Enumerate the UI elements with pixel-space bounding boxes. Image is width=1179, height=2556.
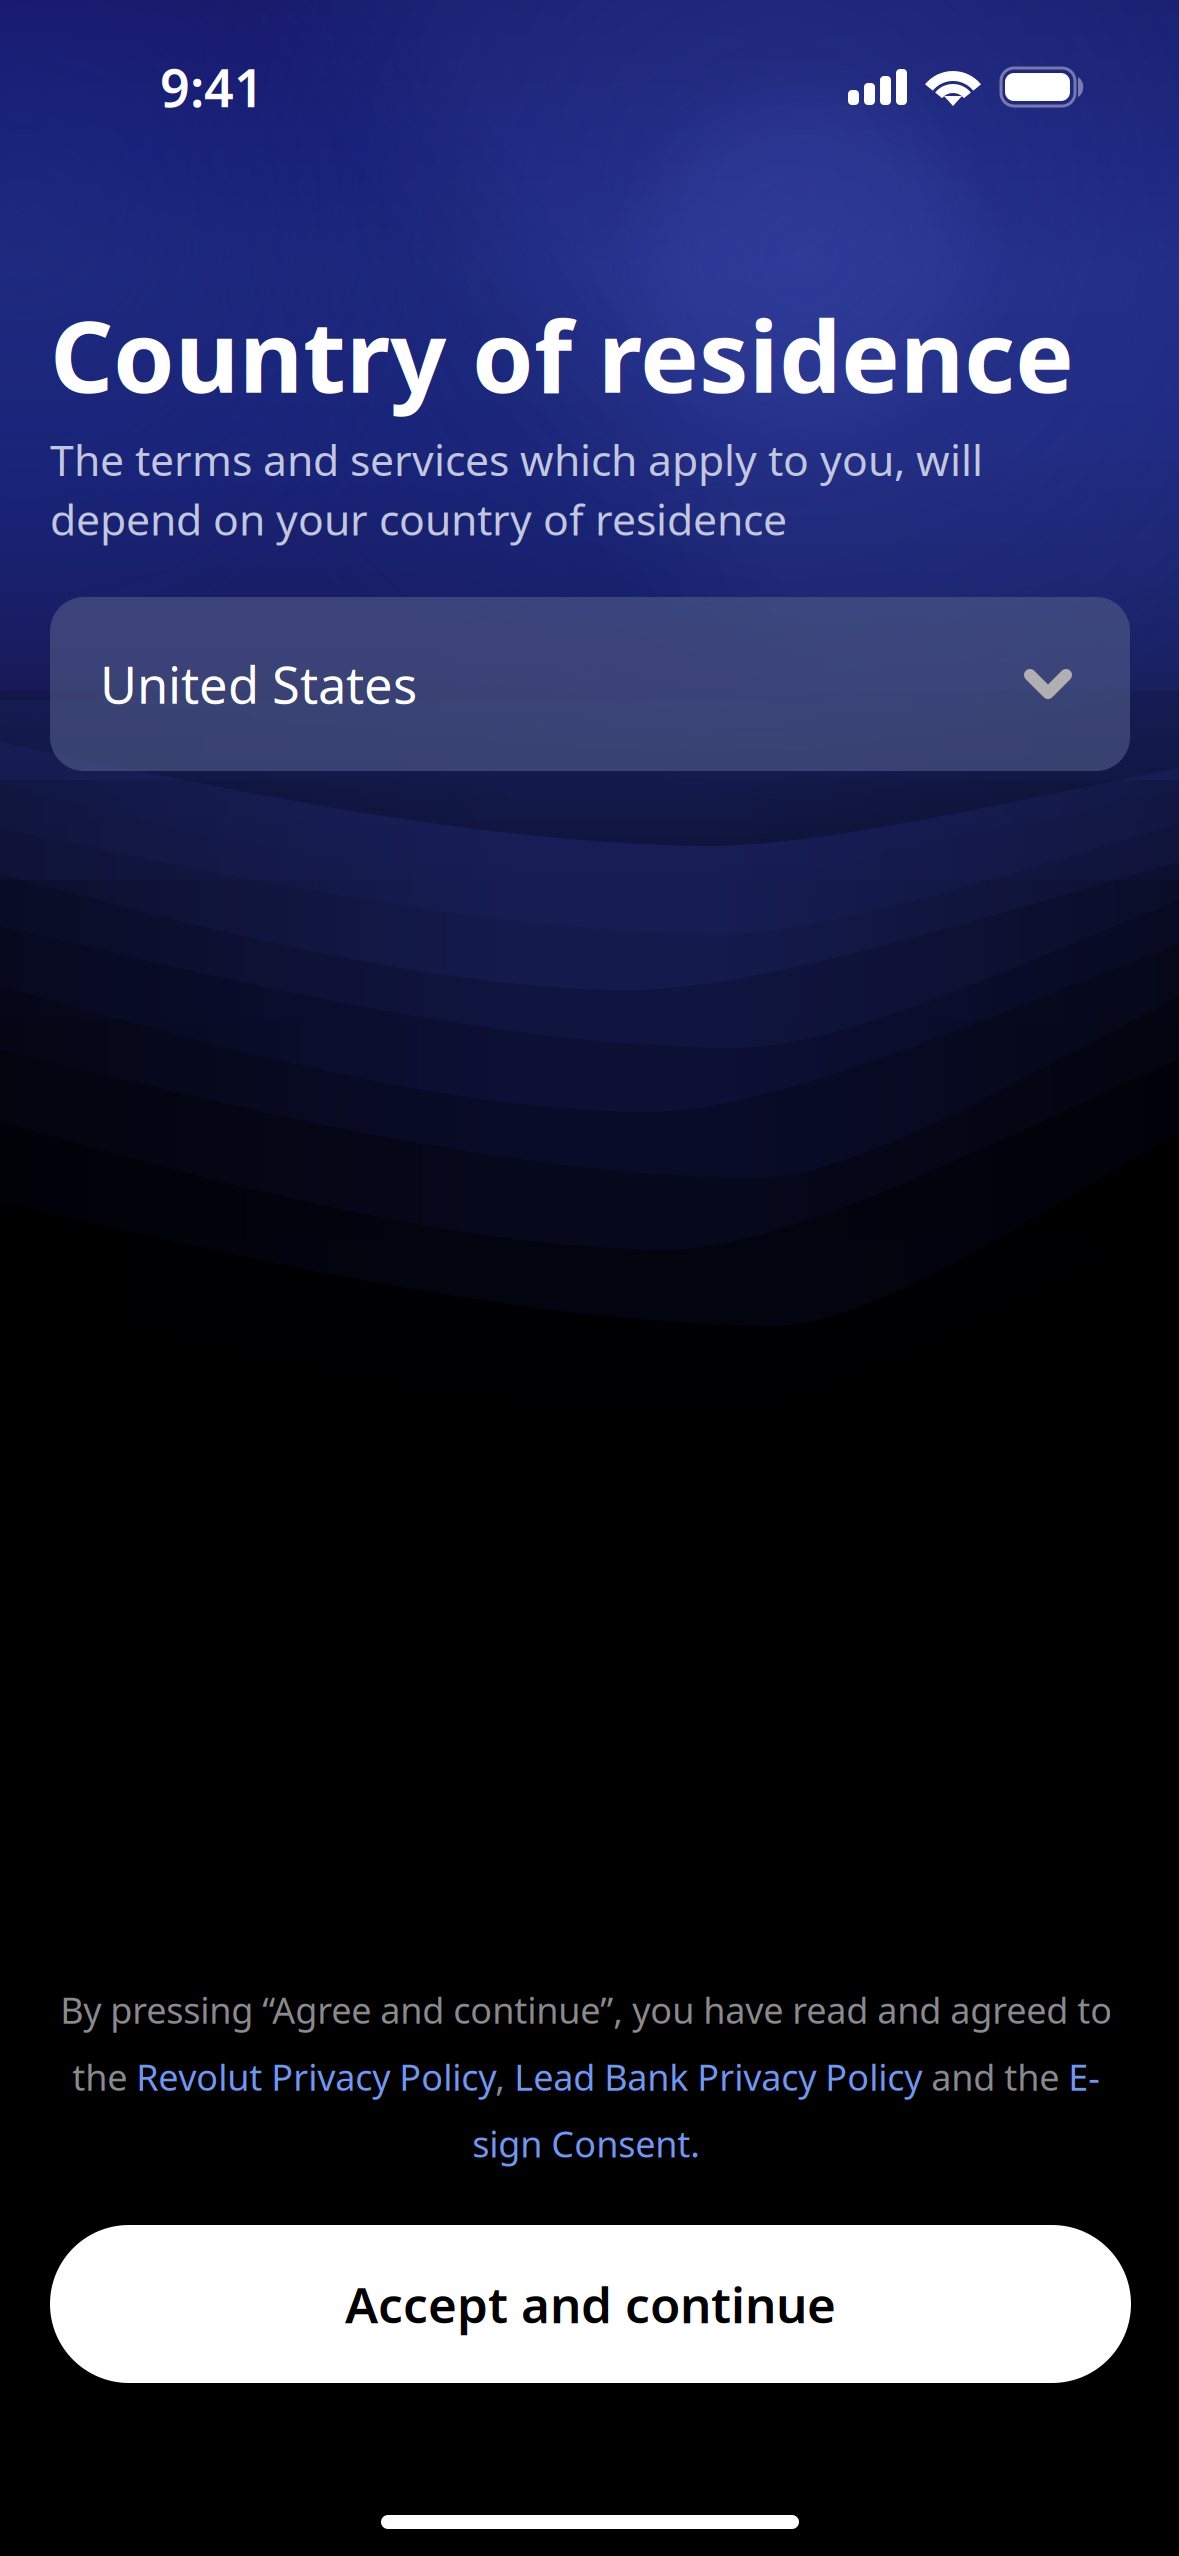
staticText: Country of residence (50, 289, 1074, 420)
button[interactable]: Accept and continue (50, 2225, 1131, 2383)
button[interactable]: United States (50, 597, 1130, 771)
staticText: The terms and services which apply to yo… (50, 431, 983, 547)
staticText: 9:41 (160, 52, 264, 122)
staticText: United States (100, 650, 417, 718)
staticText: Accept and continue (345, 2271, 836, 2337)
staticText: By pressing “Agree and continue”, you ha… (60, 1986, 1112, 2167)
